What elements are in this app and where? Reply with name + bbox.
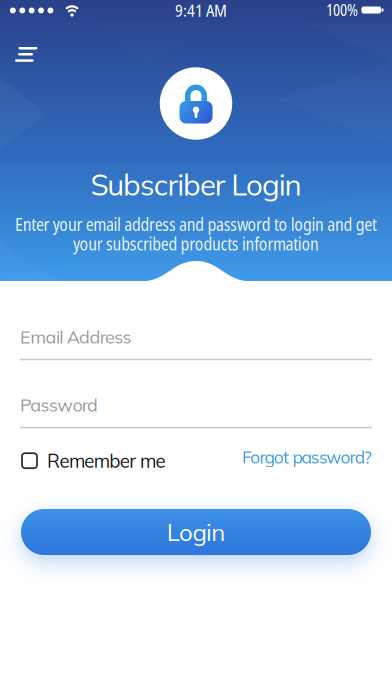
button[interactable]: Remember me (22, 449, 165, 472)
staticText: Password (20, 393, 98, 416)
staticText: 9:41 AM (175, 0, 227, 22)
button[interactable]: Email Address (20, 325, 372, 361)
button[interactable]: Login (21, 509, 371, 555)
staticText: Email Address (20, 325, 132, 348)
staticText: Remember me (47, 449, 165, 472)
button[interactable]: Password (20, 393, 372, 429)
staticText: Login (167, 517, 225, 547)
staticText: 100% (326, 0, 358, 20)
staticText: Forgot password? (242, 446, 372, 468)
staticText: Subscriber Login (90, 166, 301, 203)
button[interactable]: Forgot password? (242, 446, 372, 468)
staticText: your subscribed products information (73, 232, 319, 256)
staticText: Enter your email address and password to… (15, 212, 377, 236)
button[interactable]: Menu (15, 41, 49, 67)
